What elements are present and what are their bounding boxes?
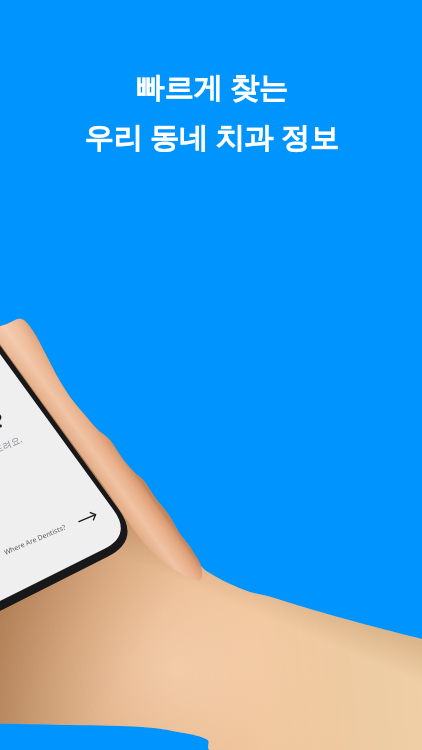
- staticText: 빠르게 찾는 우리 동네 치과 정보: [84, 67, 339, 156]
